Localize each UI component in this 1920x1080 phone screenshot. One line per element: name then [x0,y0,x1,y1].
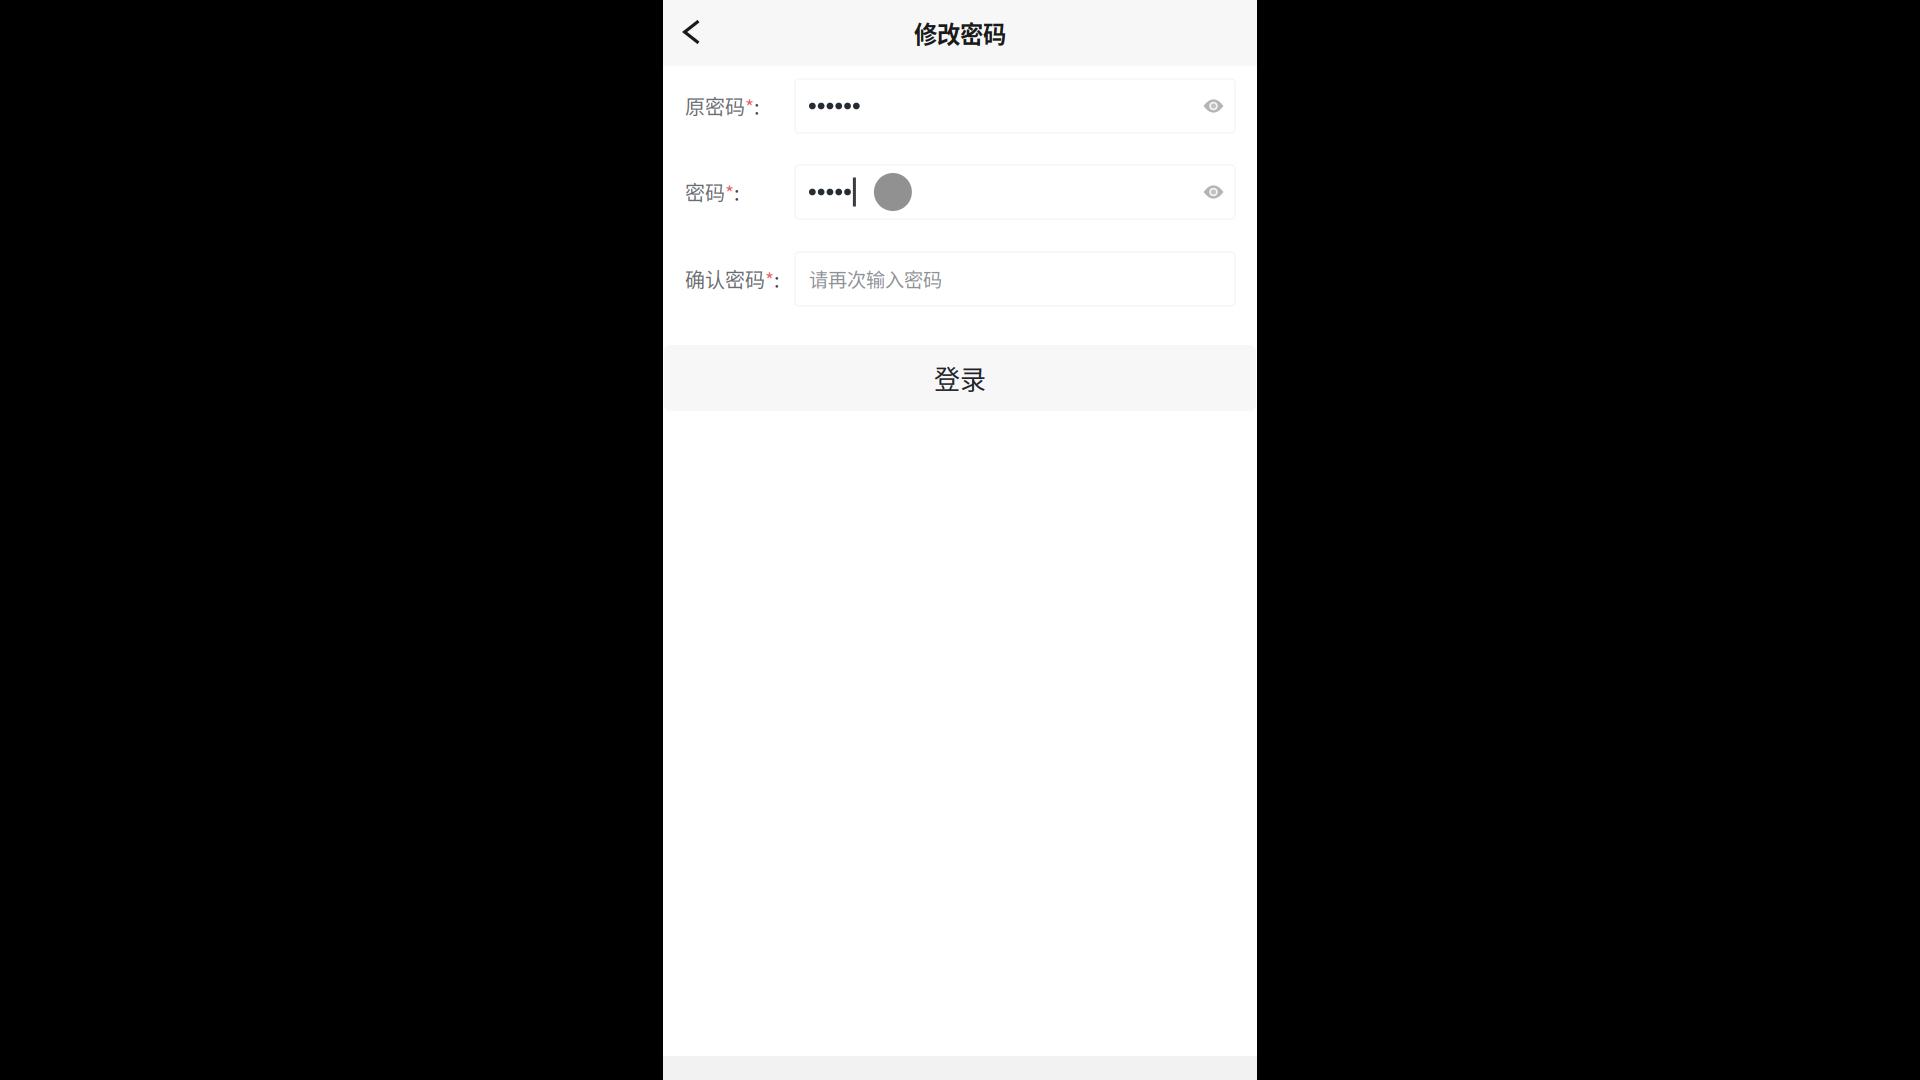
staticText: * [765,265,774,293]
staticText: 登录 [934,359,986,397]
staticText: 原密码 [685,91,745,120]
staticText: : [774,264,780,293]
button[interactable]: Back [663,0,718,66]
button[interactable]: 原密码 [795,79,1235,133]
staticText: * [745,92,754,120]
button[interactable]: 密码 [795,165,1235,219]
staticText: 请再次输入密码 [809,265,942,293]
button[interactable]: Show password [1203,98,1224,114]
button[interactable]: 确认密码 [795,252,1235,306]
button[interactable]: Show password [1203,184,1224,200]
staticText: 确认密码 [685,264,765,293]
staticText: : [734,177,740,206]
button[interactable]: 登录 [664,345,1256,411]
staticText: * [725,178,734,206]
staticText: : [754,91,760,120]
staticText: 密码 [685,177,725,206]
staticText: 修改密码 [914,16,1006,50]
